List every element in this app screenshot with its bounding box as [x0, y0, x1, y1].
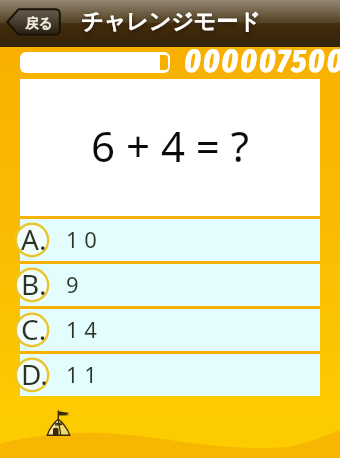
staticText: 6 + 4 = ?: [91, 117, 250, 174]
staticText: D.: [21, 355, 48, 391]
button[interactable]: 9: [20, 264, 320, 306]
staticText: チャレンジモード: [81, 8, 261, 36]
staticText: 1 4: [66, 314, 97, 344]
button[interactable]: 1 1: [20, 354, 320, 396]
button[interactable]: 1 0: [20, 219, 320, 261]
staticText: 9: [66, 269, 79, 299]
staticText: 000007500: [184, 41, 340, 73]
button[interactable]: 1 4: [20, 309, 320, 351]
button[interactable]: 戻る: [6, 8, 61, 36]
staticText: 1 0: [66, 224, 97, 254]
staticText: A.: [21, 220, 47, 256]
staticText: 1 1: [66, 359, 97, 389]
staticText: C.: [21, 310, 47, 346]
staticText: 戻る: [25, 15, 53, 32]
staticText: B.: [21, 265, 47, 301]
